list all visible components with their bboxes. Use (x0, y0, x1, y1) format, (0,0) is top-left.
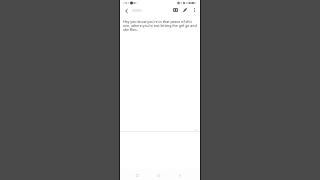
button[interactable]: Back (174, 170, 184, 180)
button[interactable]: Edit (181, 6, 189, 14)
button[interactable]: Recents (132, 170, 142, 180)
button[interactable]: Formatting (171, 6, 179, 14)
button[interactable]: Hey you know you're in that peace of shi… (120, 15, 200, 32)
button[interactable]: Back (122, 7, 130, 15)
staticText: Hey you know you're in that peace of shi… (123, 19, 198, 32)
button[interactable]: More options (190, 6, 198, 14)
button[interactable]: Home (153, 170, 163, 180)
